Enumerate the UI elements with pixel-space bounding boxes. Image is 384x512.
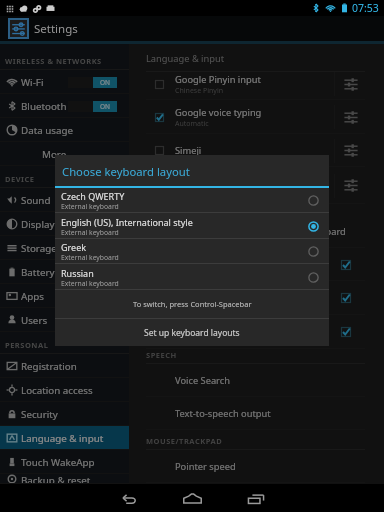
button[interactable]: Bluetooth <box>0 94 129 118</box>
staticText: DEVICE <box>5 174 35 184</box>
button[interactable]: Battery <box>0 260 129 284</box>
staticText: To switch, press Control-Spacebar <box>133 299 252 309</box>
staticText: Greek <box>61 241 87 253</box>
staticText: Choose keyboard layout <box>62 164 190 179</box>
button[interactable]: External keyboard <box>129 315 384 349</box>
button[interactable]: Recents <box>224 484 288 512</box>
button[interactable]: AT Translated Set 2 keyboard <box>129 248 384 281</box>
staticText: External keyboard <box>61 228 119 237</box>
staticText: Language & input <box>146 52 225 65</box>
staticText: WIRELESS & NETWORKS <box>5 56 102 66</box>
staticText: Bluetooth <box>21 100 67 113</box>
staticText: External keyboard <box>61 253 119 262</box>
button[interactable]: Wi-Fi <box>0 70 129 94</box>
button[interactable]: Storage <box>0 236 129 260</box>
staticText: External keyboard <box>61 202 119 211</box>
staticText: Battery <box>21 266 55 279</box>
button[interactable]: Apps <box>0 284 129 308</box>
staticText: Default English (US), Intl. styl keyboar… <box>175 225 346 238</box>
staticText: Voice Search <box>175 374 230 387</box>
button[interactable]: Google Pinyin input <box>129 72 384 100</box>
button[interactable]: English (US), International style <box>55 213 329 239</box>
staticText: Storage <box>21 242 57 255</box>
button[interactable]: Back <box>96 484 160 512</box>
staticText: Registration <box>21 360 77 373</box>
button[interactable]: Russian <box>55 264 329 290</box>
button[interactable]: Sound <box>0 188 129 212</box>
button[interactable]: Simeji <box>129 134 384 167</box>
button[interactable]: Display <box>0 212 129 236</box>
button[interactable]: Android Keyboard <box>129 281 384 315</box>
staticText: Sound <box>21 194 51 207</box>
button[interactable]: Touch WakeApp <box>0 450 129 474</box>
staticText: Data usage <box>21 124 74 137</box>
button[interactable]: Czech QWERTY <box>55 188 329 213</box>
staticText: Users <box>21 314 48 327</box>
staticText: More... <box>42 148 75 161</box>
button[interactable]: Greek <box>55 239 329 264</box>
staticText: Display <box>21 218 55 231</box>
button[interactable]: Backup & reset <box>0 474 129 484</box>
button[interactable]: Users <box>0 308 129 332</box>
button[interactable]: Google voice typing <box>129 100 384 134</box>
button[interactable]: Set up keyboard layouts <box>55 319 329 346</box>
staticText: Google voice typing <box>175 106 262 119</box>
staticText: Text-to-speech output <box>175 407 271 420</box>
staticText: Russian <box>61 267 94 279</box>
staticText: Wi-Fi <box>21 76 44 89</box>
staticText: Czech QWERTY <box>61 190 125 202</box>
button[interactable]: Pointer speed <box>129 450 384 483</box>
staticText: Hacker's Keyboard <box>175 179 257 192</box>
staticText: Android Keyboard <box>175 292 254 305</box>
staticText: ON <box>100 78 111 87</box>
button[interactable]: Data usage <box>0 118 129 142</box>
staticText: Touch WakeApp <box>21 456 95 469</box>
staticText: Security <box>21 408 58 421</box>
button[interactable]: Hacker's Keyboard <box>129 167 384 204</box>
button[interactable]: Registration <box>0 354 129 378</box>
button[interactable]: Language & input <box>0 426 129 450</box>
button[interactable]: Default English (US), Intl. styl keyboar… <box>129 215 384 248</box>
button[interactable]: Text-to-speech output <box>129 397 384 430</box>
staticText: AT Translated Set 2 keyboard <box>175 258 301 271</box>
staticText: PERSONAL <box>5 340 49 350</box>
button[interactable]: Voice Search <box>129 364 384 397</box>
staticText: Location access <box>21 384 93 397</box>
staticText: External keyboard <box>175 326 254 339</box>
staticText: Simeji <box>175 144 202 157</box>
staticText: Chinese Pinyin <box>175 86 224 96</box>
button[interactable]: More... <box>0 142 129 166</box>
staticText: SPEECH <box>146 350 177 360</box>
staticText: Automatic <box>175 119 209 129</box>
staticText: Settings <box>34 21 78 37</box>
staticText: 07:53 <box>352 1 379 15</box>
button[interactable]: Security <box>0 402 129 426</box>
button[interactable]: Location access <box>0 378 129 402</box>
staticText: Google Pinyin input <box>175 73 261 86</box>
staticText: Language & input <box>21 432 104 445</box>
staticText: MOUSE/TRACKPAD <box>146 436 223 446</box>
staticText: English (US), International style <box>61 216 193 228</box>
staticText: Backup & reset <box>21 474 91 484</box>
staticText: Pointer speed <box>175 460 236 473</box>
staticText: Set up keyboard layouts <box>144 327 240 339</box>
staticText: Apps <box>21 290 45 303</box>
staticText: External keyboard <box>61 279 119 288</box>
button[interactable]: Home <box>160 484 224 512</box>
staticText: ON <box>100 102 111 111</box>
